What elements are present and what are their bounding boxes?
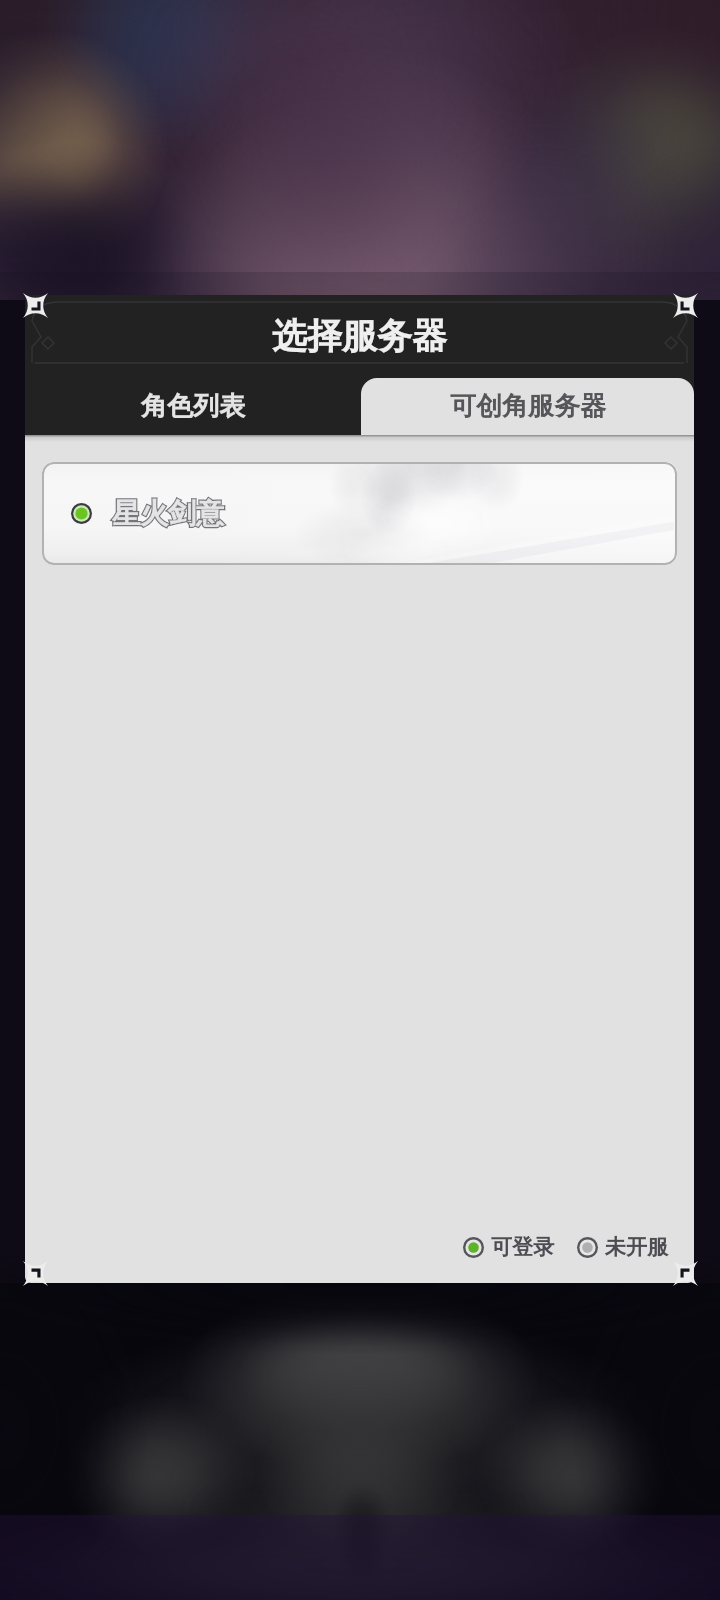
staticText: 角色列表 [141, 390, 245, 423]
staticText: 星火剑意 [112, 496, 224, 531]
button[interactable]: 星火剑意 [42, 462, 677, 565]
staticText: 未开服 [605, 1234, 668, 1260]
button[interactable]: 可创角服务器 [361, 378, 694, 435]
staticText: 可创角服务器 [450, 390, 606, 423]
button[interactable]: 角色列表 [25, 378, 361, 435]
staticText: 可登录 [491, 1234, 554, 1260]
button[interactable]: 可登录 [463, 1234, 554, 1260]
staticText: 选择服务器 [272, 314, 447, 358]
button[interactable]: 未开服 [577, 1234, 668, 1260]
staticText: 星火剑意 [112, 496, 224, 531]
